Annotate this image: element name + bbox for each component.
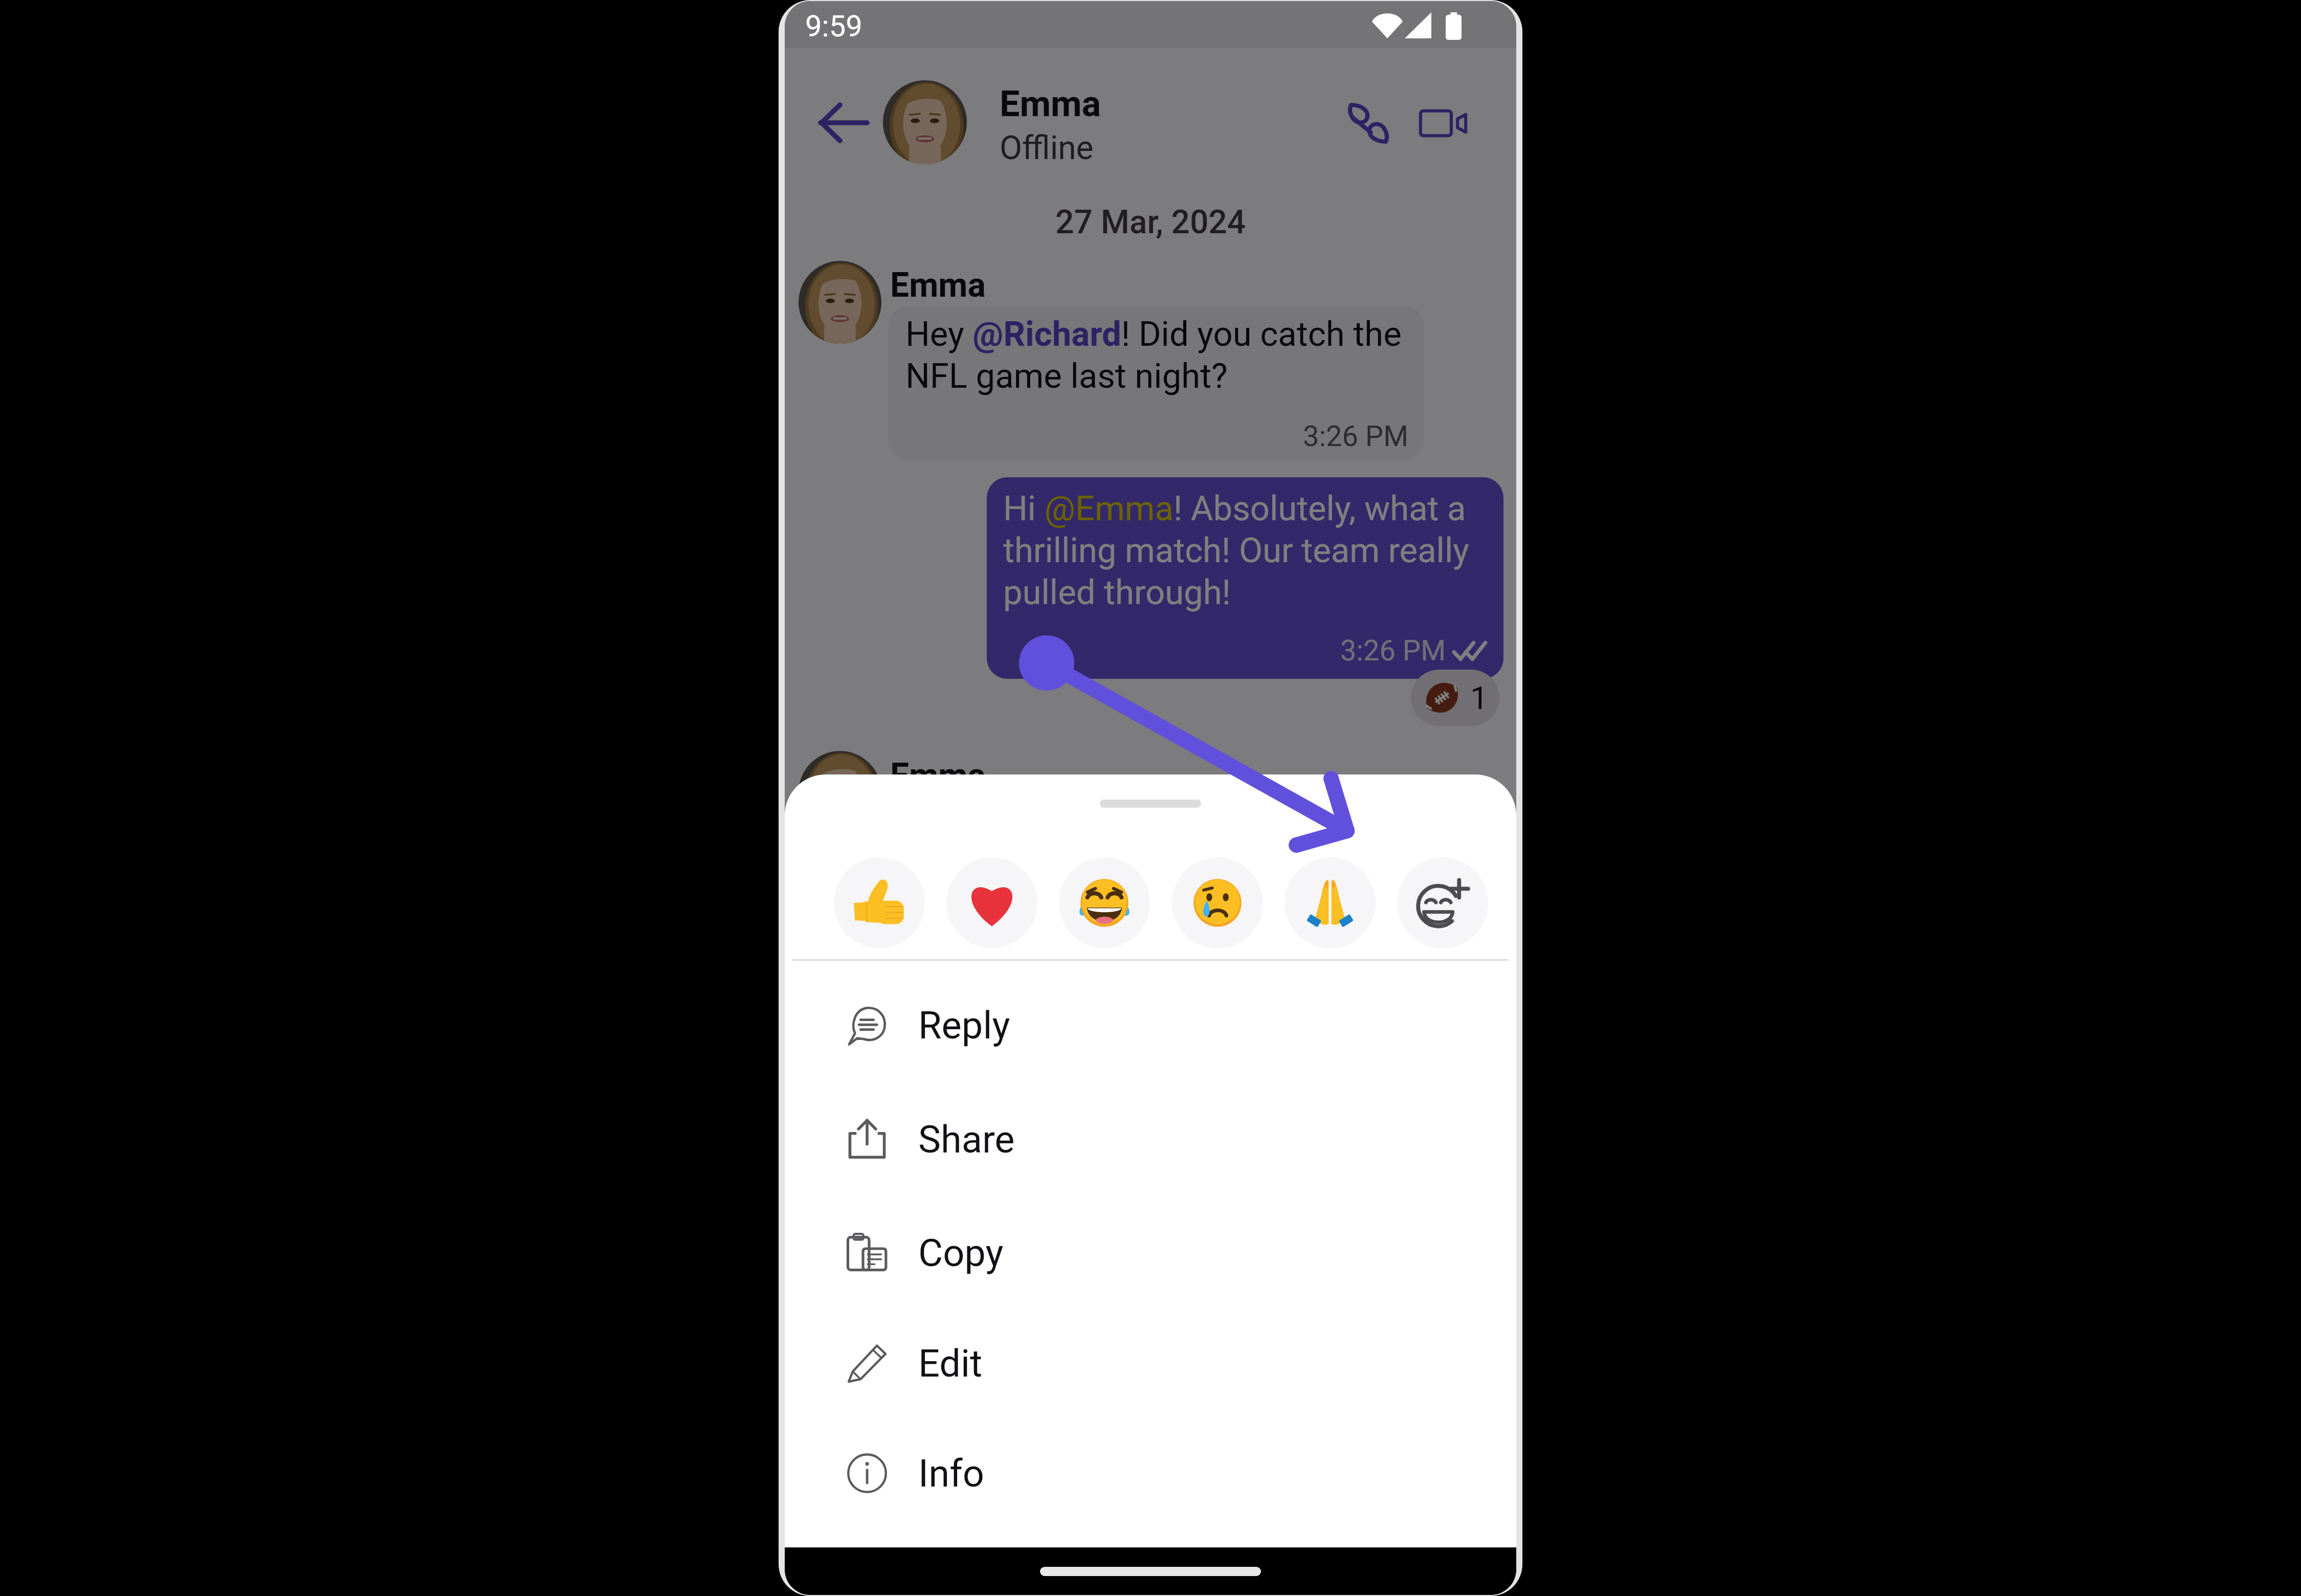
button[interactable]: Edit: [785, 1306, 1516, 1420]
button[interactable]: Share: [785, 1082, 1516, 1196]
button[interactable]: Emma profile photo: [883, 80, 967, 164]
button[interactable]: heart reaction: [946, 857, 1037, 948]
button[interactable]: laughing reaction: [1059, 857, 1150, 948]
button[interactable]: Info: [785, 1416, 1516, 1530]
staticText: Emma: [890, 756, 986, 795]
button[interactable]: Emma avatar: [799, 261, 881, 344]
button[interactable]: Hey @Richard! Did you catch the NFL game…: [888, 306, 1424, 460]
button[interactable]: Hi @Emma! Absolutely, what a thrilling m…: [987, 477, 1503, 679]
staticText: Emma: [890, 265, 986, 305]
staticText: Hi @Emma! Absolutely, what a thrilling m…: [1003, 489, 1486, 612]
staticText: Edit: [918, 1341, 983, 1386]
button[interactable]: Voice call: [1337, 93, 1398, 153]
button[interactable]: Football reaction, 1: [1411, 670, 1499, 726]
button[interactable]: Emma avatar: [799, 751, 881, 834]
button[interactable]: Drag handle: [1074, 793, 1227, 814]
staticText: Share: [918, 1117, 1015, 1162]
staticText: 3:26 PM: [1340, 634, 1446, 668]
button[interactable]: Copy: [785, 1196, 1516, 1310]
button[interactable]: thumbs up reaction: [834, 857, 925, 948]
button[interactable]: Video call: [1413, 93, 1473, 153]
staticText: Hey @Richard! Did you catch the NFL game…: [905, 314, 1409, 396]
staticText: 1: [1470, 679, 1488, 717]
staticText: Emma: [1000, 83, 1101, 125]
staticText: Info: [918, 1451, 984, 1496]
staticText: 3:26 PM: [1303, 419, 1409, 453]
button[interactable]: Back: [802, 82, 884, 164]
button[interactable]: Reply: [785, 968, 1516, 1082]
button[interactable]: more reactions: [1397, 857, 1488, 948]
staticText: Reply: [918, 1003, 1010, 1048]
button[interactable]: pray reaction: [1285, 857, 1376, 948]
staticText: 27 Mar, 2024: [1055, 203, 1246, 241]
staticText: Offline: [1000, 129, 1094, 167]
staticText: 9:59: [805, 9, 862, 43]
staticText: Copy: [918, 1231, 1004, 1275]
button[interactable]: crying reaction: [1172, 857, 1263, 948]
